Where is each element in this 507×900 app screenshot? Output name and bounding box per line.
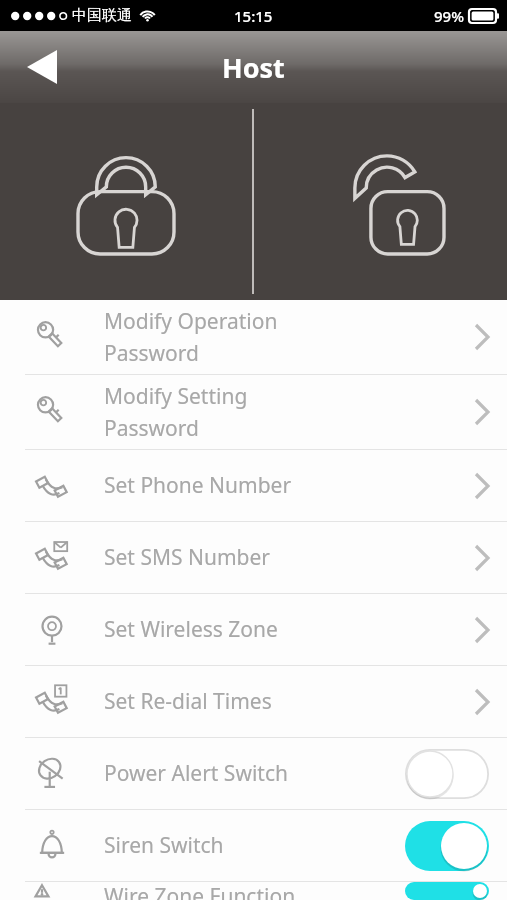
button[interactable]: Siren Switch <box>405 821 489 871</box>
staticText: Set Re-dial Times <box>104 687 272 716</box>
staticText: Modify Operation <box>104 307 278 336</box>
staticText: 15:15 <box>234 6 273 26</box>
staticText: 中国联通 <box>72 6 132 25</box>
button[interactable]: Power Alert Switch <box>0 738 507 809</box>
button[interactable]: Siren Switch <box>0 810 507 881</box>
staticText: Set Wireless Zone <box>104 615 278 644</box>
button[interactable]: Set Wireless Zone <box>0 594 507 665</box>
button[interactable]: Arm <box>0 103 252 300</box>
staticText: Siren Switch <box>104 831 224 860</box>
button[interactable]: Back <box>10 37 74 97</box>
staticText: Set Phone Number <box>104 471 292 500</box>
button[interactable]: Power Alert Switch <box>405 749 489 799</box>
button[interactable]: Disarm <box>254 103 507 300</box>
staticText: Password <box>104 414 199 443</box>
button[interactable]: Modify Setting <box>0 375 507 449</box>
button[interactable]: Wire Zone Function <box>405 882 489 900</box>
staticText: 99% <box>434 6 464 26</box>
staticText: Password <box>104 339 199 368</box>
button[interactable]: Modify Operation <box>0 300 507 374</box>
button[interactable]: Wire Zone Function <box>0 882 507 900</box>
staticText: Power Alert Switch <box>104 759 288 788</box>
staticText: Wire Zone Function <box>104 882 296 900</box>
staticText: Host <box>222 49 285 86</box>
staticText: Set SMS Number <box>104 543 270 572</box>
button[interactable]: Set Re-dial Times <box>0 666 507 737</box>
staticText: Modify Setting <box>104 382 248 411</box>
button[interactable]: Set SMS Number <box>0 522 507 593</box>
button[interactable]: Set Phone Number <box>0 450 507 521</box>
